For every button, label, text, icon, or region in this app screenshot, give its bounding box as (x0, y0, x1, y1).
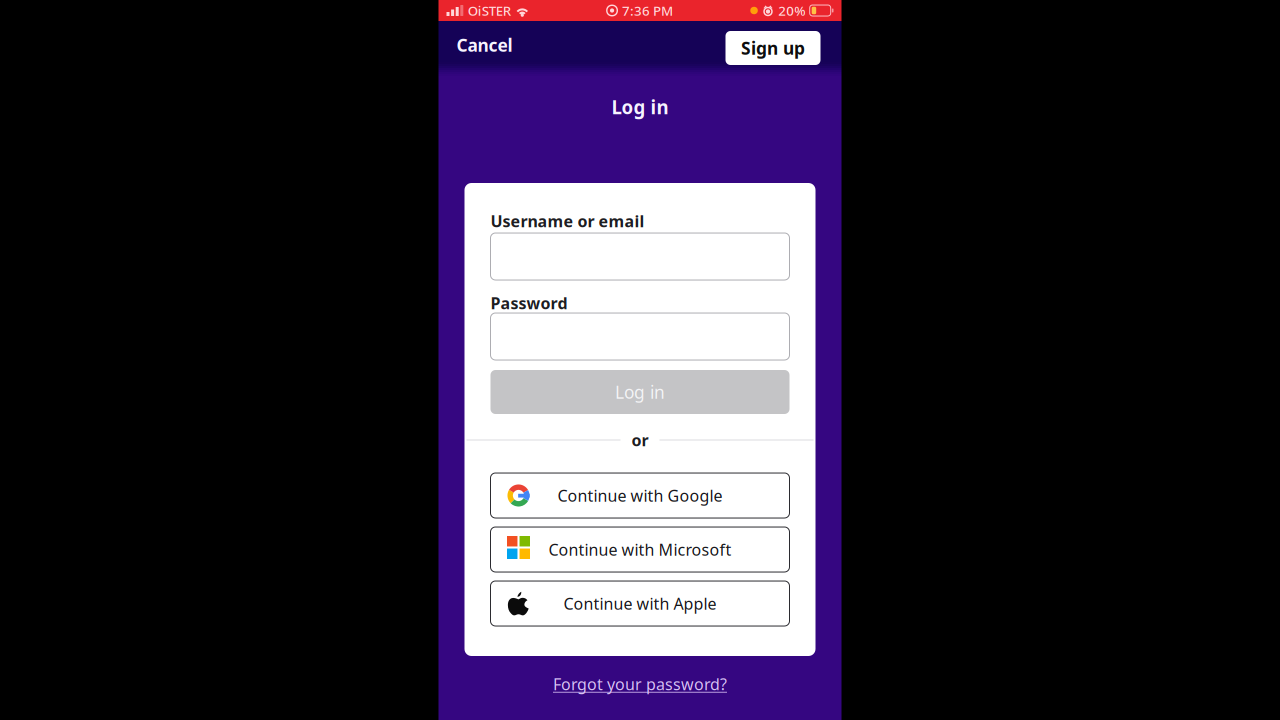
button[interactable]: Password (490, 313, 789, 360)
staticText: Log in (611, 95, 668, 119)
button[interactable]: Sign up (725, 28, 820, 62)
staticText: Password (490, 292, 567, 314)
staticText: Continue with Apple (563, 593, 716, 614)
button[interactable]: Continue with Apple (490, 581, 789, 626)
button[interactable]: Continue with Google (490, 473, 789, 518)
staticText: Username or email (490, 210, 644, 232)
staticText: Continue with Microsoft (548, 539, 731, 560)
button[interactable]: Log in (490, 370, 789, 414)
button[interactable]: Cancel (438, 21, 530, 69)
staticText: OiSTER (468, 2, 511, 19)
staticText: Forgot your password? (553, 673, 727, 695)
staticText: Sign up (741, 36, 805, 59)
button[interactable]: Username or email (490, 233, 789, 280)
staticText: 20% (778, 2, 805, 19)
staticText: Log in (615, 380, 665, 403)
staticText: 7:36 PM (622, 2, 673, 19)
staticText: or (631, 429, 648, 451)
button[interactable]: Forgot your password? (553, 656, 727, 704)
staticText: Cancel (456, 33, 512, 56)
staticText: Continue with Google (557, 485, 722, 506)
button[interactable]: Continue with Microsoft (490, 527, 789, 572)
